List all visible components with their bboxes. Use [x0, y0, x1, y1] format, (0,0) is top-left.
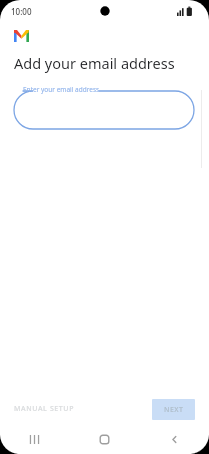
- staticText: 10:00: [11, 6, 32, 17]
- button[interactable]: Recent apps: [0, 425, 69, 454]
- staticText: MANUAL SETUP: [14, 404, 75, 414]
- button[interactable]: MANUAL SETUP: [10, 399, 79, 419]
- button[interactable]: Enter your email address: [14, 85, 194, 131]
- button[interactable]: Back: [139, 425, 209, 454]
- staticText: Add your email address: [14, 53, 175, 73]
- button[interactable]: NEXT: [152, 399, 195, 420]
- button[interactable]: Home: [69, 425, 139, 454]
- staticText: Enter your email address: [23, 85, 100, 94]
- staticText: NEXT: [164, 405, 184, 415]
